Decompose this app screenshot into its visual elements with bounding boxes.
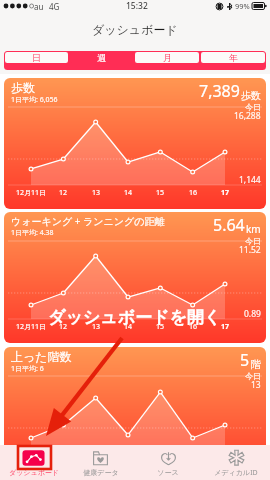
staticText: 月: [163, 52, 172, 63]
staticText: 15: [156, 322, 165, 332]
staticText: 週: [97, 52, 106, 63]
staticText: 日: [32, 52, 41, 63]
staticText: 今日: [245, 371, 261, 381]
staticText: 4G: [49, 1, 60, 12]
staticText: 階: [251, 358, 261, 371]
staticText: 16: [189, 322, 198, 332]
staticText: 16: [189, 188, 198, 198]
button[interactable]: ダッシュボード: [0, 445, 67, 480]
staticText: 12月11日: [16, 188, 47, 198]
button[interactable]: 健康データ: [67, 445, 134, 480]
button[interactable]: メディカルID: [202, 445, 270, 480]
staticText: 年: [229, 52, 238, 63]
staticText: 16,288: [234, 110, 261, 122]
staticText: 1,144: [239, 174, 261, 186]
button[interactable]: 年: [201, 52, 265, 63]
staticText: 14: [124, 322, 133, 332]
button[interactable]: 月: [135, 52, 199, 63]
staticText: 14: [124, 188, 133, 198]
staticText: ダッシュボード: [92, 22, 178, 37]
staticText: 12月11日: [16, 322, 47, 332]
button[interactable]: 週: [70, 52, 133, 63]
button[interactable]: 歩数: [4, 78, 266, 209]
button[interactable]: 日: [5, 52, 68, 63]
staticText: メディカルID: [214, 468, 258, 478]
staticText: 12: [59, 188, 68, 198]
staticText: 15:32: [126, 0, 148, 12]
staticText: 5.64: [213, 214, 245, 236]
staticText: 13: [92, 322, 101, 332]
staticText: 1日平均: 4.38: [11, 228, 54, 238]
button[interactable]: ソース: [134, 445, 202, 480]
staticText: 歩数: [11, 80, 35, 95]
staticText: 7,389: [199, 80, 240, 102]
staticText: ダッシュボードを開く: [48, 307, 222, 328]
staticText: 健康データ: [83, 468, 119, 477]
staticText: 13: [92, 188, 101, 198]
staticText: au: [34, 1, 44, 12]
staticText: ソース: [157, 468, 179, 477]
staticText: 1日平均: 6: [11, 364, 44, 374]
staticText: 5: [240, 349, 250, 371]
staticText: 17: [221, 322, 230, 332]
staticText: km: [246, 222, 261, 236]
staticText: 99%: [235, 1, 250, 11]
staticText: 歩数: [241, 89, 261, 102]
staticText: 0.89: [244, 308, 261, 320]
staticText: 17: [221, 188, 230, 198]
staticText: 15: [156, 188, 165, 198]
staticText: ダッシュボード: [9, 468, 59, 477]
button[interactable]: 上った階数: [4, 347, 266, 478]
staticText: 11.52: [239, 244, 261, 256]
staticText: 今日: [245, 236, 261, 246]
staticText: 上った階数: [11, 349, 72, 364]
staticText: 今日: [245, 102, 261, 112]
staticText: ウォーキング + ランニングの距離: [11, 214, 165, 228]
staticText: 12: [59, 322, 68, 332]
button[interactable]: ウォーキング + ランニングの距離: [4, 212, 266, 343]
staticText: 13: [251, 379, 261, 391]
staticText: 1日平均: 6,056: [11, 95, 58, 105]
